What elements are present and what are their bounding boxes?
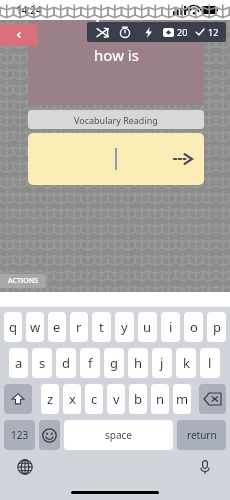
- button[interactable]: r: [70, 312, 88, 342]
- staticText: f: [88, 354, 93, 372]
- button[interactable]: l: [200, 348, 220, 378]
- button[interactable]: Timer: [117, 24, 133, 40]
- button[interactable]: z: [41, 384, 59, 414]
- button[interactable]: space: [64, 420, 173, 450]
- button[interactable]: 20: [163, 26, 188, 38]
- staticText: x: [69, 390, 76, 408]
- staticText: h: [134, 354, 143, 372]
- button[interactable]: m: [173, 384, 191, 414]
- staticText: 14:24: [16, 3, 42, 17]
- button[interactable]: n: [151, 384, 169, 414]
- button[interactable]: k: [176, 348, 196, 378]
- button[interactable]: return: [177, 420, 226, 450]
- staticText: return: [187, 428, 217, 442]
- button[interactable]: x: [63, 384, 81, 414]
- staticText: e: [53, 318, 61, 336]
- staticText: q: [9, 318, 17, 336]
- staticText: b: [134, 390, 142, 408]
- button[interactable]: i: [161, 312, 180, 342]
- staticText: how: [95, 14, 137, 43]
- button[interactable]: Dictation: [194, 456, 216, 478]
- staticText: r: [76, 318, 82, 336]
- button[interactable]: d: [56, 348, 76, 378]
- staticText: how is: [94, 45, 139, 65]
- staticText: space: [105, 428, 132, 442]
- button[interactable]: 123: [4, 420, 35, 450]
- staticText: j: [160, 354, 164, 372]
- button[interactable]: p: [207, 312, 226, 342]
- button[interactable]: b: [129, 384, 147, 414]
- button[interactable]: y: [115, 312, 134, 342]
- button[interactable]: Shuffle: [94, 24, 110, 40]
- button[interactable]: Shift: [4, 384, 32, 414]
- staticText: ACTIONS: [8, 276, 39, 286]
- staticText: a: [15, 354, 23, 372]
- button[interactable]: Quick: [140, 24, 156, 40]
- staticText: z: [47, 390, 54, 408]
- button[interactable]: a: [9, 348, 28, 378]
- button[interactable]: Submit: [28, 133, 204, 185]
- staticText: l: [208, 354, 212, 372]
- button[interactable]: e: [48, 312, 66, 342]
- staticText: g: [110, 354, 118, 372]
- staticText: m: [176, 390, 189, 408]
- staticText: u: [143, 318, 152, 336]
- button[interactable]: Backspace: [199, 384, 226, 414]
- button[interactable]: q: [4, 312, 22, 342]
- staticText: t: [99, 318, 104, 336]
- button[interactable]: u: [138, 312, 157, 342]
- staticText: 12: [208, 26, 219, 38]
- button[interactable]: Change keyboard: [14, 456, 36, 478]
- button[interactable]: h: [128, 348, 148, 378]
- staticText: d: [62, 354, 70, 372]
- staticText: w: [30, 318, 41, 336]
- staticText: c: [91, 390, 98, 408]
- staticText: i: [169, 318, 173, 336]
- staticText: v: [113, 390, 120, 408]
- staticText: p: [213, 318, 221, 336]
- staticText: o: [190, 318, 198, 336]
- button[interactable]: Back: [0, 24, 38, 46]
- button[interactable]: s: [32, 348, 52, 378]
- button[interactable]: j: [152, 348, 172, 378]
- button[interactable]: c: [85, 384, 103, 414]
- staticText: Vocabulary Reading: [74, 114, 158, 126]
- staticText: y: [121, 318, 128, 336]
- staticText: 20: [177, 26, 188, 38]
- button[interactable]: t: [92, 312, 111, 342]
- staticText: s: [39, 354, 46, 372]
- button[interactable]: Emoji: [39, 420, 60, 450]
- button[interactable]: g: [104, 348, 124, 378]
- button[interactable]: Submit: [172, 148, 194, 170]
- button[interactable]: w: [26, 312, 44, 342]
- staticText: n: [156, 390, 165, 408]
- button[interactable]: o: [184, 312, 203, 342]
- button[interactable]: Vocabulary Reading: [28, 110, 204, 129]
- button[interactable]: ACTIONS: [0, 274, 46, 288]
- button[interactable]: 12: [195, 26, 219, 38]
- staticText: k: [183, 354, 190, 372]
- button[interactable]: v: [107, 384, 125, 414]
- staticText: 123: [11, 428, 29, 442]
- button[interactable]: f: [80, 348, 100, 378]
